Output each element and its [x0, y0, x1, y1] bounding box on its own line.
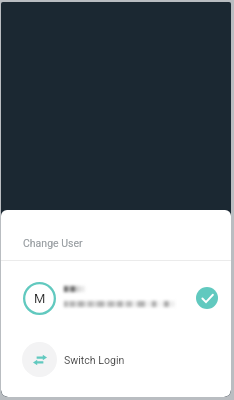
staticText: M — [34, 291, 46, 306]
staticText: Change User — [23, 237, 83, 249]
button[interactable]: Switch Login — [1, 337, 231, 382]
button[interactable]: M — [1, 271, 231, 325]
other: Selected user — [196, 287, 218, 309]
staticText: Switch Login — [64, 354, 125, 366]
other: Switch Login — [33, 353, 47, 367]
